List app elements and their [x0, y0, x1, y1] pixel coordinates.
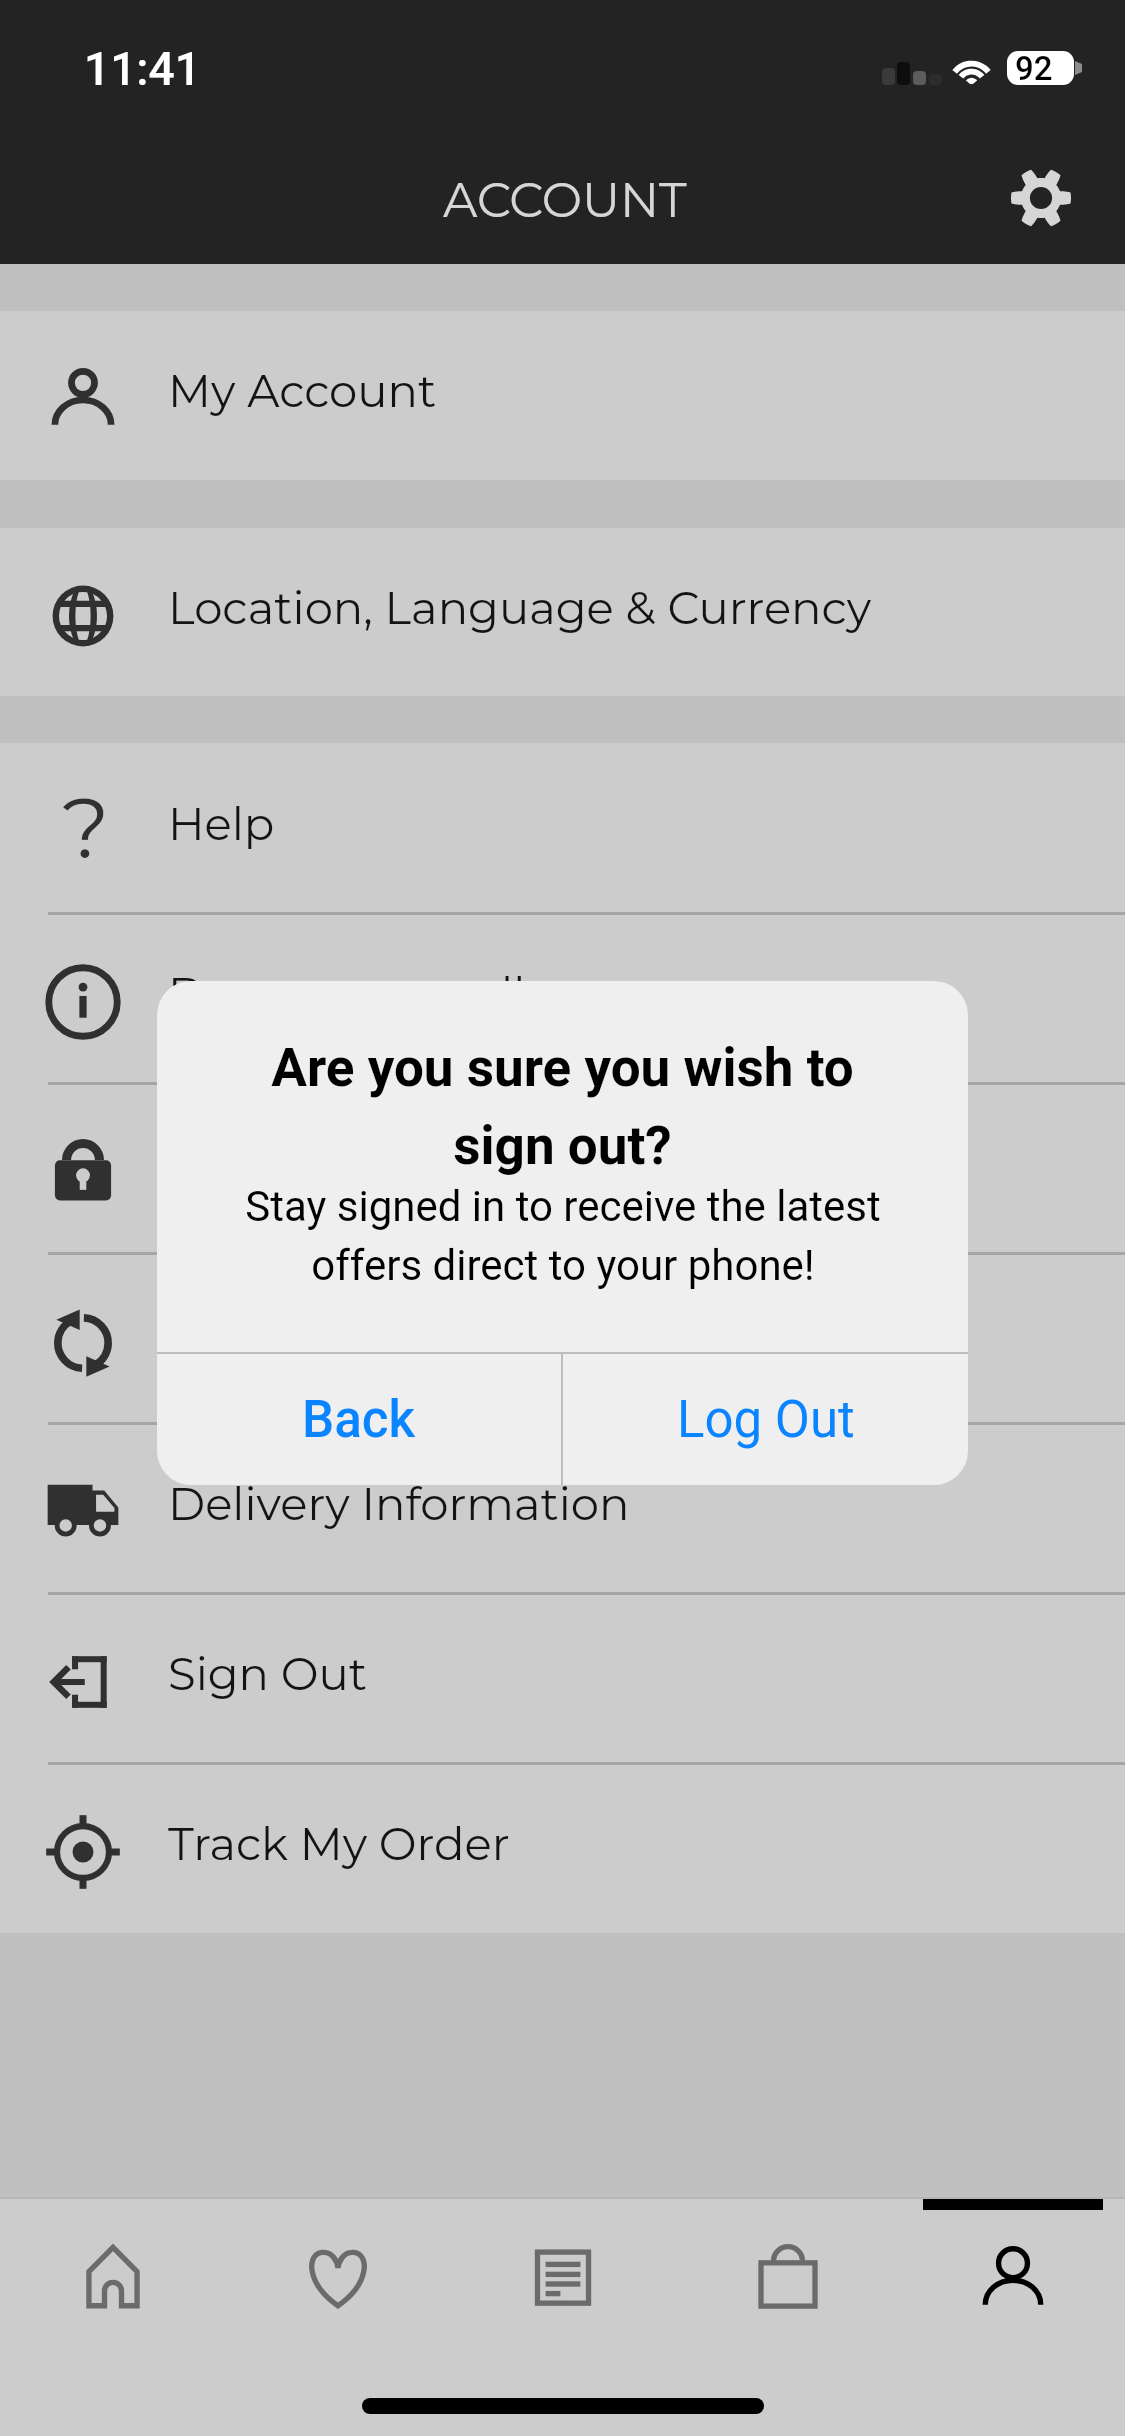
button[interactable]: ? [0, 743, 1125, 913]
staticText: Are you sure you wish to sign out? [271, 1037, 854, 1177]
button[interactable]: Track My Order [0, 1763, 1125, 1933]
staticText: Log Out [677, 1390, 855, 1450]
staticText: Back [302, 1390, 416, 1450]
button[interactable]: Delivery Information [0, 1423, 1125, 1593]
button[interactable]: Wishlist [225, 2199, 450, 2359]
button[interactable]: My Account [0, 311, 1125, 480]
staticText: Delivery Information [168, 1476, 630, 1531]
button[interactable]: Bag [675, 2199, 900, 2359]
staticText: 92 [1015, 49, 1053, 88]
button[interactable]: Settings [993, 150, 1089, 246]
button[interactable]: Home [0, 2199, 225, 2359]
staticText: Location, Language & Currency [168, 580, 872, 635]
staticText: Returns Policy [168, 1306, 492, 1361]
staticText: My Account [168, 363, 437, 418]
button[interactable]: Sign Out [0, 1593, 1125, 1763]
button[interactable]: Location, Language & Currency [0, 528, 1125, 696]
button[interactable]: Log Out [563, 1354, 968, 1485]
staticText: 11:41 [84, 42, 201, 96]
button[interactable]: Become a reseller [0, 913, 1125, 1083]
staticText: Track My Order [168, 1816, 510, 1871]
staticText: Sign Out [168, 1646, 368, 1701]
staticText: ACCOUNT [443, 171, 687, 230]
button[interactable]: Privacy Policy [0, 1083, 1125, 1253]
button[interactable]: Orders [450, 2199, 675, 2359]
staticText: Privacy Policy [168, 1136, 475, 1191]
staticText: Help [168, 796, 275, 851]
button[interactable]: Account [900, 2199, 1125, 2359]
staticText: Stay signed in to receive the latest off… [245, 1182, 881, 1290]
button[interactable]: Returns Policy [0, 1253, 1125, 1423]
staticText: ? [62, 777, 110, 879]
staticText: Become a reseller [168, 966, 571, 1021]
button[interactable]: Back [157, 1354, 561, 1485]
